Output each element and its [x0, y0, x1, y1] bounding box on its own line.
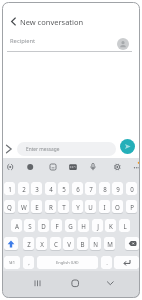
staticText: 8 — [103, 185, 107, 193]
button[interactable]: D — [38, 219, 49, 232]
staticText: C — [54, 240, 58, 248]
button[interactable] — [10, 17, 17, 26]
staticText: . — [106, 259, 108, 267]
button[interactable]: 0 — [126, 182, 137, 195]
staticText: P — [130, 203, 134, 211]
button[interactable]: 7 — [85, 182, 96, 195]
button[interactable] — [89, 162, 103, 177]
staticText: E — [35, 203, 39, 211]
button[interactable]: K — [105, 219, 116, 232]
button[interactable]: V — [63, 237, 74, 250]
staticText: Recipient — [10, 37, 36, 45]
button[interactable]: A — [11, 219, 22, 232]
button[interactable]: O — [112, 200, 123, 213]
staticText: F — [55, 222, 59, 230]
button[interactable] — [4, 237, 18, 250]
button[interactable] — [5, 144, 13, 154]
staticText: V — [67, 240, 71, 248]
button[interactable]: J — [92, 219, 103, 232]
staticText: 6 — [76, 185, 80, 193]
button[interactable]: 1 — [4, 182, 15, 195]
staticText: T — [62, 203, 66, 211]
button[interactable]: S — [24, 219, 35, 232]
staticText: Q — [7, 203, 12, 211]
button[interactable]: G — [65, 219, 76, 232]
staticText: New conversation — [20, 17, 84, 27]
button[interactable]: B — [77, 237, 88, 250]
button[interactable]: U — [85, 200, 96, 213]
button[interactable] — [120, 139, 135, 154]
button[interactable]: 9 — [112, 182, 123, 195]
staticText: X — [40, 240, 44, 248]
button[interactable] — [117, 38, 129, 50]
staticText: 9 — [116, 185, 120, 193]
staticText: J — [97, 222, 99, 230]
staticText: K — [109, 222, 113, 230]
button[interactable]: 5 — [58, 182, 69, 195]
button[interactable]: !#1 — [4, 256, 20, 269]
staticText: G — [68, 222, 73, 230]
staticText: English (UK) — [56, 260, 79, 265]
staticText: S — [28, 222, 32, 230]
button[interactable]: X — [36, 237, 47, 250]
button[interactable]: F — [51, 219, 62, 232]
button[interactable]: R — [45, 200, 56, 213]
staticText: Enter message — [26, 146, 60, 153]
staticText: 5 — [62, 185, 66, 193]
staticText: L — [123, 222, 127, 230]
button[interactable] — [125, 237, 139, 250]
button[interactable]: C — [50, 237, 61, 250]
button[interactable]: 8 — [99, 182, 110, 195]
staticText: B — [80, 240, 85, 248]
staticText: 7 — [89, 185, 93, 193]
button[interactable]: 3 — [31, 182, 42, 195]
staticText: U — [88, 203, 93, 211]
button[interactable] — [113, 162, 127, 177]
staticText: !#1 — [9, 260, 15, 265]
staticText: Z — [27, 240, 31, 248]
staticText: A — [15, 222, 19, 230]
staticText: 4 — [49, 185, 53, 193]
button[interactable]: L — [119, 219, 130, 232]
staticText: , — [28, 259, 30, 267]
staticText: D — [41, 222, 46, 230]
button[interactable]: Enter message — [17, 142, 116, 156]
button[interactable] — [49, 162, 63, 177]
button[interactable]: Z — [23, 237, 34, 250]
button[interactable]: 4 — [45, 182, 56, 195]
button[interactable]: W — [18, 200, 29, 213]
button[interactable]: 2 — [18, 182, 29, 195]
staticText: 1 — [8, 185, 12, 193]
button[interactable] — [69, 277, 87, 295]
button[interactable]: I — [99, 200, 110, 213]
button[interactable] — [104, 277, 122, 295]
button[interactable] — [31, 277, 49, 295]
button[interactable]: T — [58, 200, 69, 213]
staticText: 0 — [130, 185, 134, 193]
staticText: O — [115, 203, 120, 211]
staticText: 2 — [22, 185, 26, 193]
button[interactable]: English (UK) — [37, 256, 98, 269]
button[interactable]: Y — [72, 200, 83, 213]
button[interactable]: E — [31, 200, 42, 213]
staticText: M — [107, 240, 113, 248]
button[interactable] — [132, 162, 140, 177]
staticText: W — [21, 203, 27, 211]
button[interactable]: P — [126, 200, 137, 213]
staticText: N — [93, 240, 98, 248]
button[interactable]: Q — [4, 200, 15, 213]
button[interactable]: 6 — [72, 182, 83, 195]
button[interactable]: . — [101, 256, 112, 269]
button[interactable] — [69, 162, 83, 177]
staticText: H — [81, 222, 86, 230]
button[interactable]: H — [78, 219, 89, 232]
button[interactable]: N — [90, 237, 101, 250]
button[interactable] — [6, 162, 20, 177]
button[interactable] — [26, 162, 40, 177]
button[interactable] — [114, 256, 139, 269]
staticText: 3 — [35, 185, 39, 193]
button[interactable]: , — [23, 256, 34, 269]
staticText: I — [103, 203, 106, 211]
button[interactable]: M — [104, 237, 115, 250]
staticText: R — [49, 203, 53, 211]
